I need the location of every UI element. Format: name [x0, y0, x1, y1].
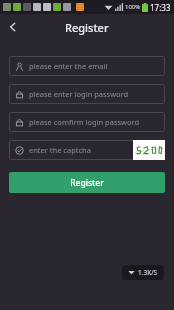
staticText: 17:33	[150, 2, 171, 13]
staticText: enter the captcha	[29, 145, 91, 155]
button[interactable]: please comfirm login password	[9, 112, 165, 132]
button[interactable]: Back	[0, 14, 26, 40]
button[interactable]: enter the captcha	[9, 140, 165, 160]
button[interactable]: Register	[9, 172, 165, 193]
staticText: please enter the email	[29, 61, 108, 71]
button[interactable]: 1.3K/S	[122, 265, 164, 280]
staticText: Register	[70, 177, 104, 189]
staticText: 1.3K/S	[138, 268, 158, 277]
button[interactable]: Refresh captcha	[133, 140, 165, 160]
staticText: 100%	[125, 3, 141, 11]
staticText: please comfirm login password	[29, 117, 140, 127]
button[interactable]: please enter the email	[9, 56, 165, 76]
staticText: please enter login password	[29, 89, 129, 99]
staticText: Register	[65, 20, 109, 35]
button[interactable]: please enter login password	[9, 84, 165, 104]
